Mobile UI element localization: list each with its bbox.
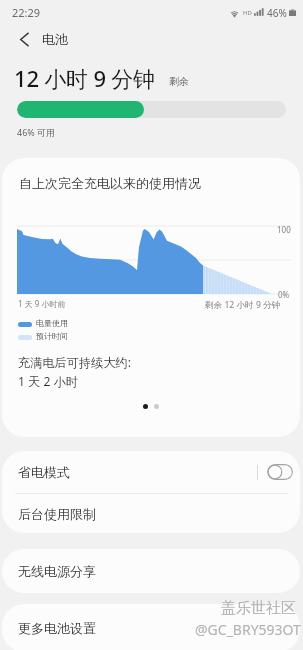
staticText: 省电模式 bbox=[18, 464, 70, 480]
staticText: 0% bbox=[278, 289, 290, 300]
staticText: 46% 可用 bbox=[17, 126, 56, 138]
button[interactable]: Power saving mode toggle bbox=[267, 464, 293, 480]
staticText: 充满电后可持续大约: bbox=[18, 354, 131, 371]
button[interactable]: 更多电池设置 bbox=[2, 604, 300, 650]
staticText: 盖乐世社区 bbox=[221, 599, 296, 618]
staticText: 1 天 9 小时前 bbox=[18, 298, 66, 309]
staticText: 预计时间 bbox=[36, 331, 68, 341]
staticText: 22:29 bbox=[12, 5, 41, 20]
staticText: 100 bbox=[277, 224, 291, 235]
button[interactable]: Back bbox=[10, 25, 38, 53]
staticText: 12 小时 9 分钟 bbox=[14, 63, 155, 93]
staticText: HD bbox=[243, 9, 252, 17]
staticText: 电量使用 bbox=[36, 318, 68, 328]
staticText: 46% bbox=[267, 6, 287, 20]
button[interactable]: 无线电源分享 bbox=[2, 549, 300, 593]
button[interactable]: 后台使用限制 bbox=[2, 494, 300, 533]
staticText: @GC_BRY593OT bbox=[195, 620, 301, 639]
button[interactable]: 省电模式 bbox=[2, 451, 300, 493]
staticText: 后台使用限制 bbox=[18, 506, 96, 522]
staticText: 更多电池设置 bbox=[18, 620, 96, 636]
staticText: 自上次完全充电以来的使用情况 bbox=[19, 175, 201, 191]
staticText: 剩余 12 小时 9 分钟 bbox=[205, 299, 281, 311]
button[interactable]: 自上次完全充电以来的使用情况 bbox=[2, 158, 300, 437]
staticText: 电池 bbox=[42, 31, 68, 47]
staticText: 剩余 bbox=[169, 75, 189, 88]
staticText: 无线电源分享 bbox=[18, 563, 96, 579]
staticText: 1 天 2 小时 bbox=[18, 373, 79, 390]
